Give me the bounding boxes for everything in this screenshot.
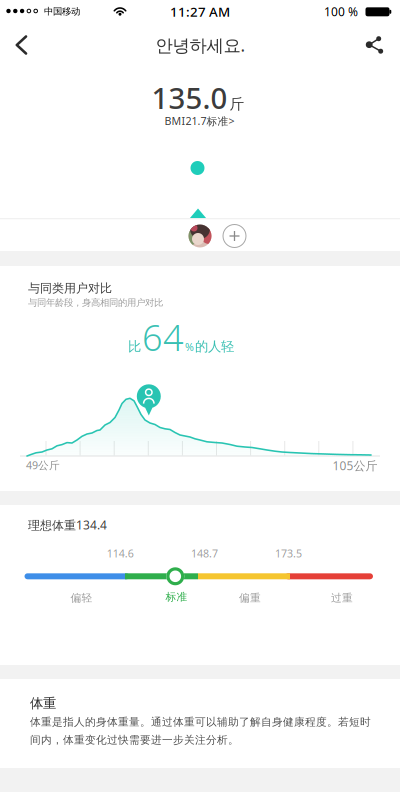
button[interactable]: Back <box>15 35 27 55</box>
staticText: 135.0 <box>151 78 227 117</box>
staticText: 标准 <box>165 590 187 603</box>
staticText: 体重 <box>30 695 56 711</box>
staticText: 偏轻 <box>70 591 92 604</box>
staticText: 过重 <box>331 591 353 604</box>
staticText: 偏重 <box>239 591 261 604</box>
staticText: 49公斤 <box>26 458 60 472</box>
button[interactable]: BMI21.7标准> <box>164 114 234 128</box>
staticText: 안녕하세요. <box>155 33 245 56</box>
staticText: 与同类用户对比 <box>28 281 112 296</box>
staticText: 体重是指人的身体重量。通过体重可以辅助了解自身健康程度。若短时 <box>30 715 371 729</box>
staticText: 64 <box>142 313 184 361</box>
staticText: % <box>185 340 194 354</box>
staticText: 中国移动 <box>44 6 80 17</box>
button[interactable]: Add <box>223 224 246 247</box>
staticText: 11:27 AM <box>170 3 230 20</box>
staticText: 100 % <box>324 3 358 19</box>
staticText: BMI21.7标准> <box>164 114 234 128</box>
staticText: 与同年龄段，身高相同的用户对比 <box>28 297 163 308</box>
button[interactable]: Profile <box>188 224 211 247</box>
staticText: 105公斤 <box>332 457 377 473</box>
button[interactable]: Share <box>365 35 385 56</box>
staticText: 114.6 <box>107 546 134 560</box>
staticText: 173.5 <box>275 546 302 560</box>
staticText: 的人轻 <box>195 338 234 355</box>
staticText: 间内，体重变化过快需要进一步关注分析。 <box>30 733 239 747</box>
staticText: 比 <box>128 338 141 355</box>
staticText: 斤 <box>229 95 244 113</box>
staticText: 理想体重134.4 <box>28 517 107 533</box>
staticText: 148.7 <box>191 546 218 560</box>
